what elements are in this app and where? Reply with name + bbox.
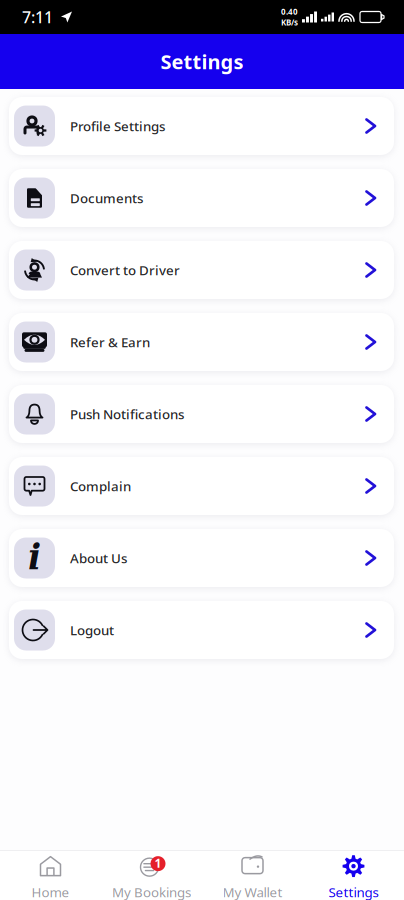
button[interactable]: 1 [101,851,202,900]
staticText: i [28,537,41,577]
button[interactable]: Complain [9,457,394,515]
staticText: Profile Settings [70,117,165,135]
staticText: Settings [160,48,243,75]
staticText: My Bookings [112,883,191,900]
staticText: Documents [70,189,143,207]
staticText: About Us [70,549,127,567]
staticText: Push Notifications [70,405,184,423]
staticText: Settings [328,883,378,900]
button[interactable]: Settings [303,851,404,900]
button[interactable]: Push Notifications [9,385,394,443]
button[interactable]: i [9,529,394,587]
staticText: Logout [70,621,114,639]
button[interactable]: My Wallet [202,851,303,900]
staticText: 7:11 [22,6,53,28]
button[interactable]: Home [0,851,101,900]
staticText: Home [31,883,69,900]
button[interactable]: Logout [9,601,394,659]
staticText: 1 [154,855,161,871]
staticText: Complain [70,477,131,495]
staticText: Convert to Driver [70,261,180,279]
button[interactable]: Refer & Earn [9,313,394,371]
button[interactable]: Convert to Driver [9,241,394,299]
button[interactable]: Documents [9,169,394,227]
staticText: My Wallet [222,883,282,900]
staticText: Refer & Earn [70,333,150,351]
staticText: 0.40 [281,6,298,17]
staticText: KB/s [281,17,298,28]
button[interactable]: Profile Settings [9,97,394,155]
